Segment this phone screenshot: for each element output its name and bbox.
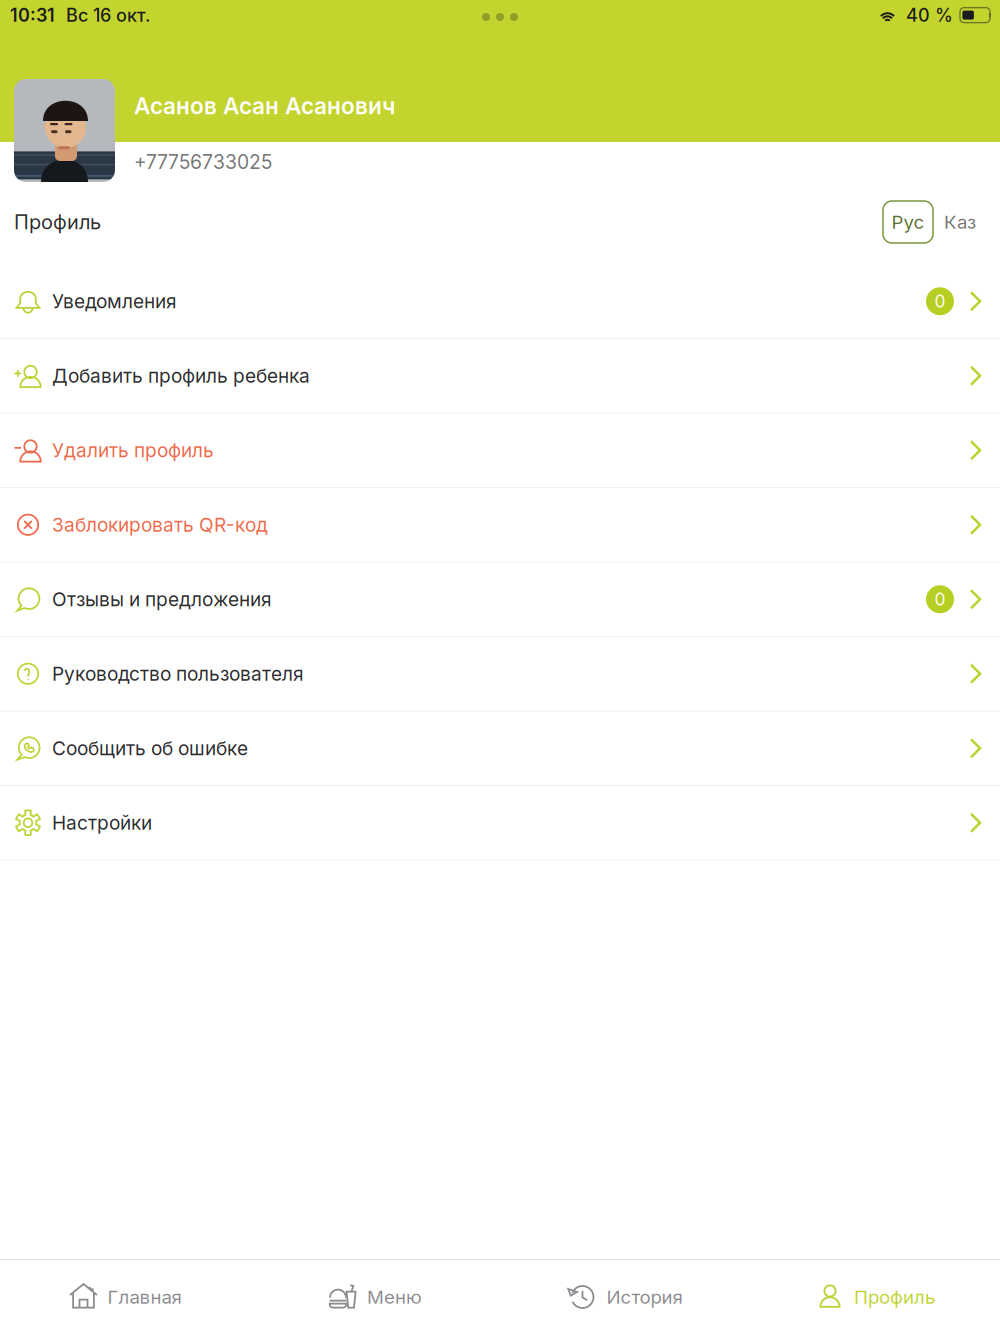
staticText: Сообщить об ошибке [52, 737, 248, 760]
staticText: Добавить профиль ребенка [52, 364, 310, 387]
staticText: Главная [107, 1286, 181, 1308]
staticText: 0 [934, 291, 945, 312]
staticText: Уведомления [52, 290, 177, 313]
staticText: Вс 16 окт. [66, 4, 150, 26]
button[interactable]: Настройки [0, 786, 1000, 860]
button[interactable]: Руководство пользователя [0, 637, 1000, 711]
button[interactable]: Удалить профиль [0, 413, 1000, 488]
staticText: Рус [891, 211, 924, 233]
button[interactable]: Рус [883, 201, 933, 243]
staticText: Меню [367, 1286, 422, 1308]
staticText: Профиль [854, 1286, 935, 1308]
button[interactable]: Сообщить об ошибке [0, 711, 1000, 786]
button[interactable]: История [500, 1260, 750, 1334]
button[interactable]: Каз [933, 201, 976, 243]
button[interactable]: Главная [0, 1260, 250, 1334]
staticText: Настройки [52, 811, 152, 834]
staticText: Каз [944, 211, 976, 233]
staticText: 0 [934, 589, 945, 610]
button[interactable]: Отзывы и предложения [0, 562, 1000, 637]
staticText: Удалить профиль [52, 439, 214, 462]
staticText: Профиль [14, 210, 101, 234]
staticText: История [606, 1286, 682, 1308]
button[interactable]: Меню [250, 1260, 500, 1334]
staticText: Отзывы и предложения [52, 588, 272, 611]
button[interactable]: Добавить профиль ребенка [0, 339, 1000, 413]
button[interactable]: Профиль [750, 1260, 1000, 1334]
staticText: 40 % [906, 4, 953, 26]
staticText: Заблокировать QR-код [52, 513, 268, 536]
staticText: Руководство пользователя [52, 662, 304, 685]
button[interactable]: Заблокировать QR-код [0, 488, 1000, 562]
button[interactable]: Уведомления [0, 264, 1000, 339]
staticText: Асанов Асан Асанович [134, 92, 395, 120]
staticText: +77756733025 [134, 150, 272, 174]
staticText: 10:31 [10, 4, 55, 26]
